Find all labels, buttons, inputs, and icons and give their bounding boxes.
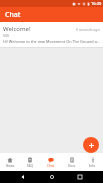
button[interactable]: Info (82, 153, 103, 171)
staticText: MRS (3, 34, 10, 38)
button[interactable]: News (0, 153, 20, 171)
button[interactable]: Welcome! (0, 22, 103, 47)
staticText: Docs (68, 164, 76, 168)
staticText: Welcome! (3, 25, 76, 33)
button[interactable]: Back (18, 172, 28, 182)
staticText: Chat (5, 10, 21, 20)
button[interactable]: FAQ (20, 153, 40, 171)
staticText: FAQ (27, 164, 34, 168)
staticText: Info (89, 164, 96, 168)
staticText: 5 seconds ago (76, 27, 100, 32)
button[interactable]: Docs (61, 153, 82, 171)
button[interactable]: New message (83, 137, 99, 153)
button[interactable]: Home (47, 172, 57, 182)
staticText: News (6, 164, 15, 168)
button[interactable]: Recent apps (75, 172, 85, 182)
staticText: Chat (47, 164, 54, 168)
staticText: Hi! Welcome to the new Movement On The G… (3, 39, 100, 44)
staticText: 16:30 (91, 1, 102, 6)
button[interactable]: Chat (40, 153, 61, 171)
